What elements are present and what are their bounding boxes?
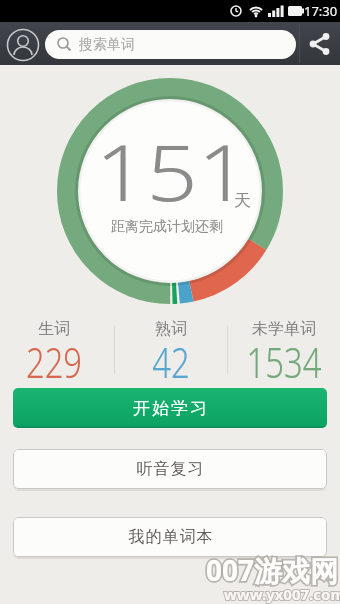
- button[interactable]: 听音复习: [13, 449, 327, 489]
- staticText: 42: [152, 333, 190, 390]
- staticText: 151: [0, 118, 340, 224]
- staticText: 我的单词本: [128, 527, 213, 547]
- staticText: 229: [26, 333, 82, 390]
- staticText: 开始学习: [132, 398, 208, 419]
- staticText: www.yx007.com: [224, 584, 340, 604]
- staticText: 天: [234, 190, 251, 211]
- button[interactable]: [300, 22, 340, 65]
- staticText: 距离完成计划还剩: [0, 218, 334, 236]
- staticText: 搜索单词: [79, 36, 135, 54]
- button[interactable]: 熟词: [114, 319, 227, 396]
- staticText: 007游戏网: [206, 551, 339, 589]
- staticText: 听音复习: [136, 459, 204, 479]
- staticText: www.yx007.com: [224, 584, 340, 604]
- staticText: 007游戏网: [206, 551, 339, 589]
- button[interactable]: 未学单词: [227, 319, 340, 396]
- staticText: 生词: [38, 319, 70, 339]
- staticText: 17:30: [304, 2, 338, 20]
- staticText: 未学单词: [252, 319, 316, 339]
- button[interactable]: [5, 27, 41, 63]
- button[interactable]: 生词: [0, 319, 108, 396]
- button[interactable]: 开始学习: [13, 388, 327, 428]
- button[interactable]: 搜索单词: [45, 30, 296, 59]
- staticText: 1534: [247, 333, 321, 390]
- button[interactable]: 我的单词本: [13, 517, 327, 557]
- staticText: 熟词: [155, 319, 187, 339]
